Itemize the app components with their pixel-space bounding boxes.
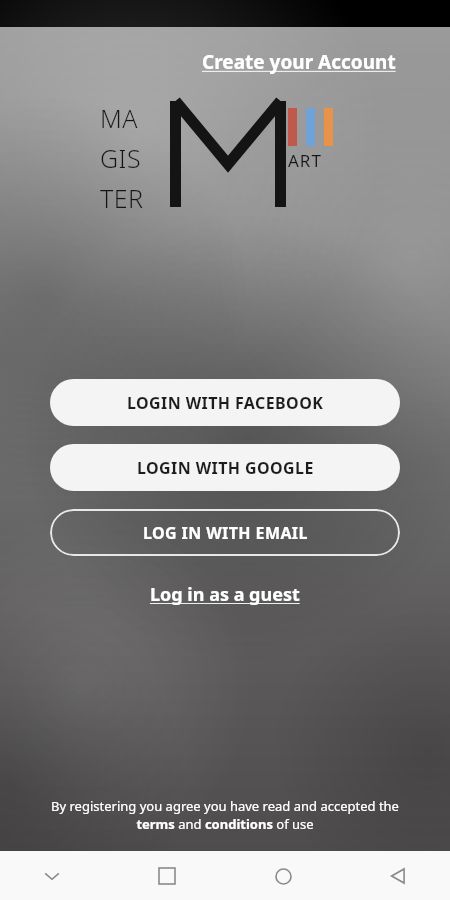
staticText: Create your Account (202, 49, 396, 75)
button[interactable]: Home (261, 854, 305, 898)
staticText: TER (100, 181, 144, 215)
staticText: ART (288, 149, 322, 172)
button[interactable]: LOGIN WITH FACEBOOK (50, 379, 400, 426)
button[interactable]: LOG IN WITH EMAIL (50, 509, 400, 556)
staticText: LOGIN WITH FACEBOOK (127, 392, 324, 414)
staticText: By registering you agree you have read a… (40, 797, 410, 833)
button[interactable]: Hide keyboard (30, 854, 74, 898)
staticText: LOG IN WITH EMAIL (143, 522, 308, 544)
staticText: LOGIN WITH GOOGLE (137, 457, 314, 479)
staticText: GIS (100, 141, 142, 175)
staticText: Log in as a guest (150, 582, 300, 607)
button[interactable]: Create your Account (198, 45, 400, 79)
staticText: MA (100, 101, 139, 135)
button[interactable]: Log in as a guest (146, 578, 304, 611)
button[interactable]: Recent apps (145, 854, 189, 898)
button[interactable]: Back (376, 854, 420, 898)
button[interactable]: LOGIN WITH GOOGLE (50, 444, 400, 491)
